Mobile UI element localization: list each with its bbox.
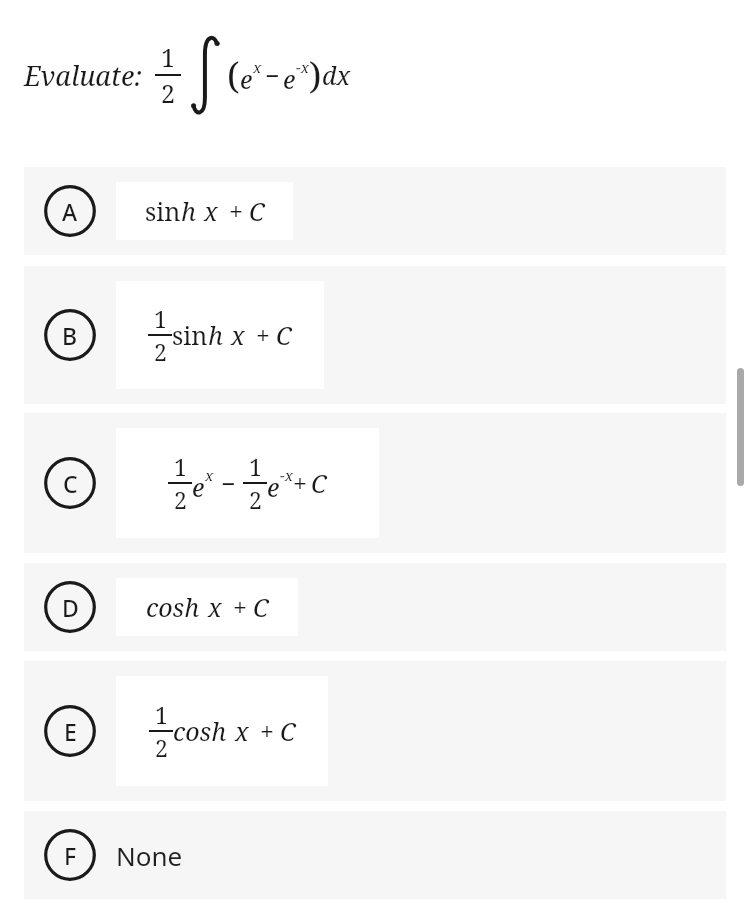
staticText: sin xyxy=(145,194,181,228)
button[interactable]: F xyxy=(24,811,726,899)
button[interactable]: C xyxy=(24,413,726,553)
button[interactable]: D xyxy=(24,563,726,651)
staticText: 2 xyxy=(154,336,167,367)
staticText: + xyxy=(229,194,243,228)
staticText: cosh xyxy=(146,590,200,624)
staticText: −x xyxy=(296,57,309,77)
staticText: + xyxy=(260,714,274,748)
staticText: dx xyxy=(322,58,351,92)
staticText: h xyxy=(208,318,223,352)
staticText: 1 xyxy=(249,451,262,482)
staticText: 2 xyxy=(161,76,175,110)
button[interactable]: E xyxy=(24,661,726,801)
staticText: x xyxy=(235,714,249,748)
staticText: C xyxy=(249,194,265,228)
staticText: e xyxy=(267,470,280,504)
staticText: x xyxy=(208,590,222,624)
staticText: e xyxy=(240,62,253,96)
button[interactable]: B xyxy=(24,266,726,404)
staticText: 1 xyxy=(155,699,168,730)
staticText: 2 xyxy=(174,484,187,515)
staticText: 2 xyxy=(155,732,168,763)
staticText: C xyxy=(280,714,296,748)
staticText: D xyxy=(62,592,79,623)
staticText: x xyxy=(231,318,245,352)
staticText: 2 xyxy=(249,484,262,515)
staticText: C xyxy=(63,468,78,499)
staticText: + xyxy=(256,318,270,352)
staticText: 1 xyxy=(174,451,187,482)
staticText: C xyxy=(276,318,292,352)
button[interactable]: A xyxy=(24,167,726,255)
staticText: Evaluate: xyxy=(24,57,142,94)
staticText: e xyxy=(192,470,205,504)
staticText: 1 xyxy=(161,40,175,74)
staticText: e xyxy=(283,62,296,96)
staticText: −x xyxy=(280,465,293,485)
staticText: E xyxy=(64,716,77,747)
staticText: B xyxy=(62,320,78,351)
staticText: + xyxy=(233,590,247,624)
staticText: h xyxy=(181,194,196,228)
staticText: 1 xyxy=(154,303,167,334)
staticText: x xyxy=(205,465,214,485)
staticText: None xyxy=(116,838,183,873)
staticText: C xyxy=(311,466,327,500)
staticText: cosh xyxy=(173,714,227,748)
staticText: x xyxy=(253,57,262,77)
staticText: − xyxy=(265,58,280,92)
staticText: − xyxy=(221,466,236,500)
staticText: + xyxy=(293,466,307,500)
staticText: ( xyxy=(227,51,240,100)
staticText: sin xyxy=(172,318,208,352)
staticText: A xyxy=(62,196,78,227)
staticText: F xyxy=(64,840,77,871)
staticText: x xyxy=(204,194,218,228)
staticText: C xyxy=(253,590,269,624)
staticText: ) xyxy=(309,51,322,100)
